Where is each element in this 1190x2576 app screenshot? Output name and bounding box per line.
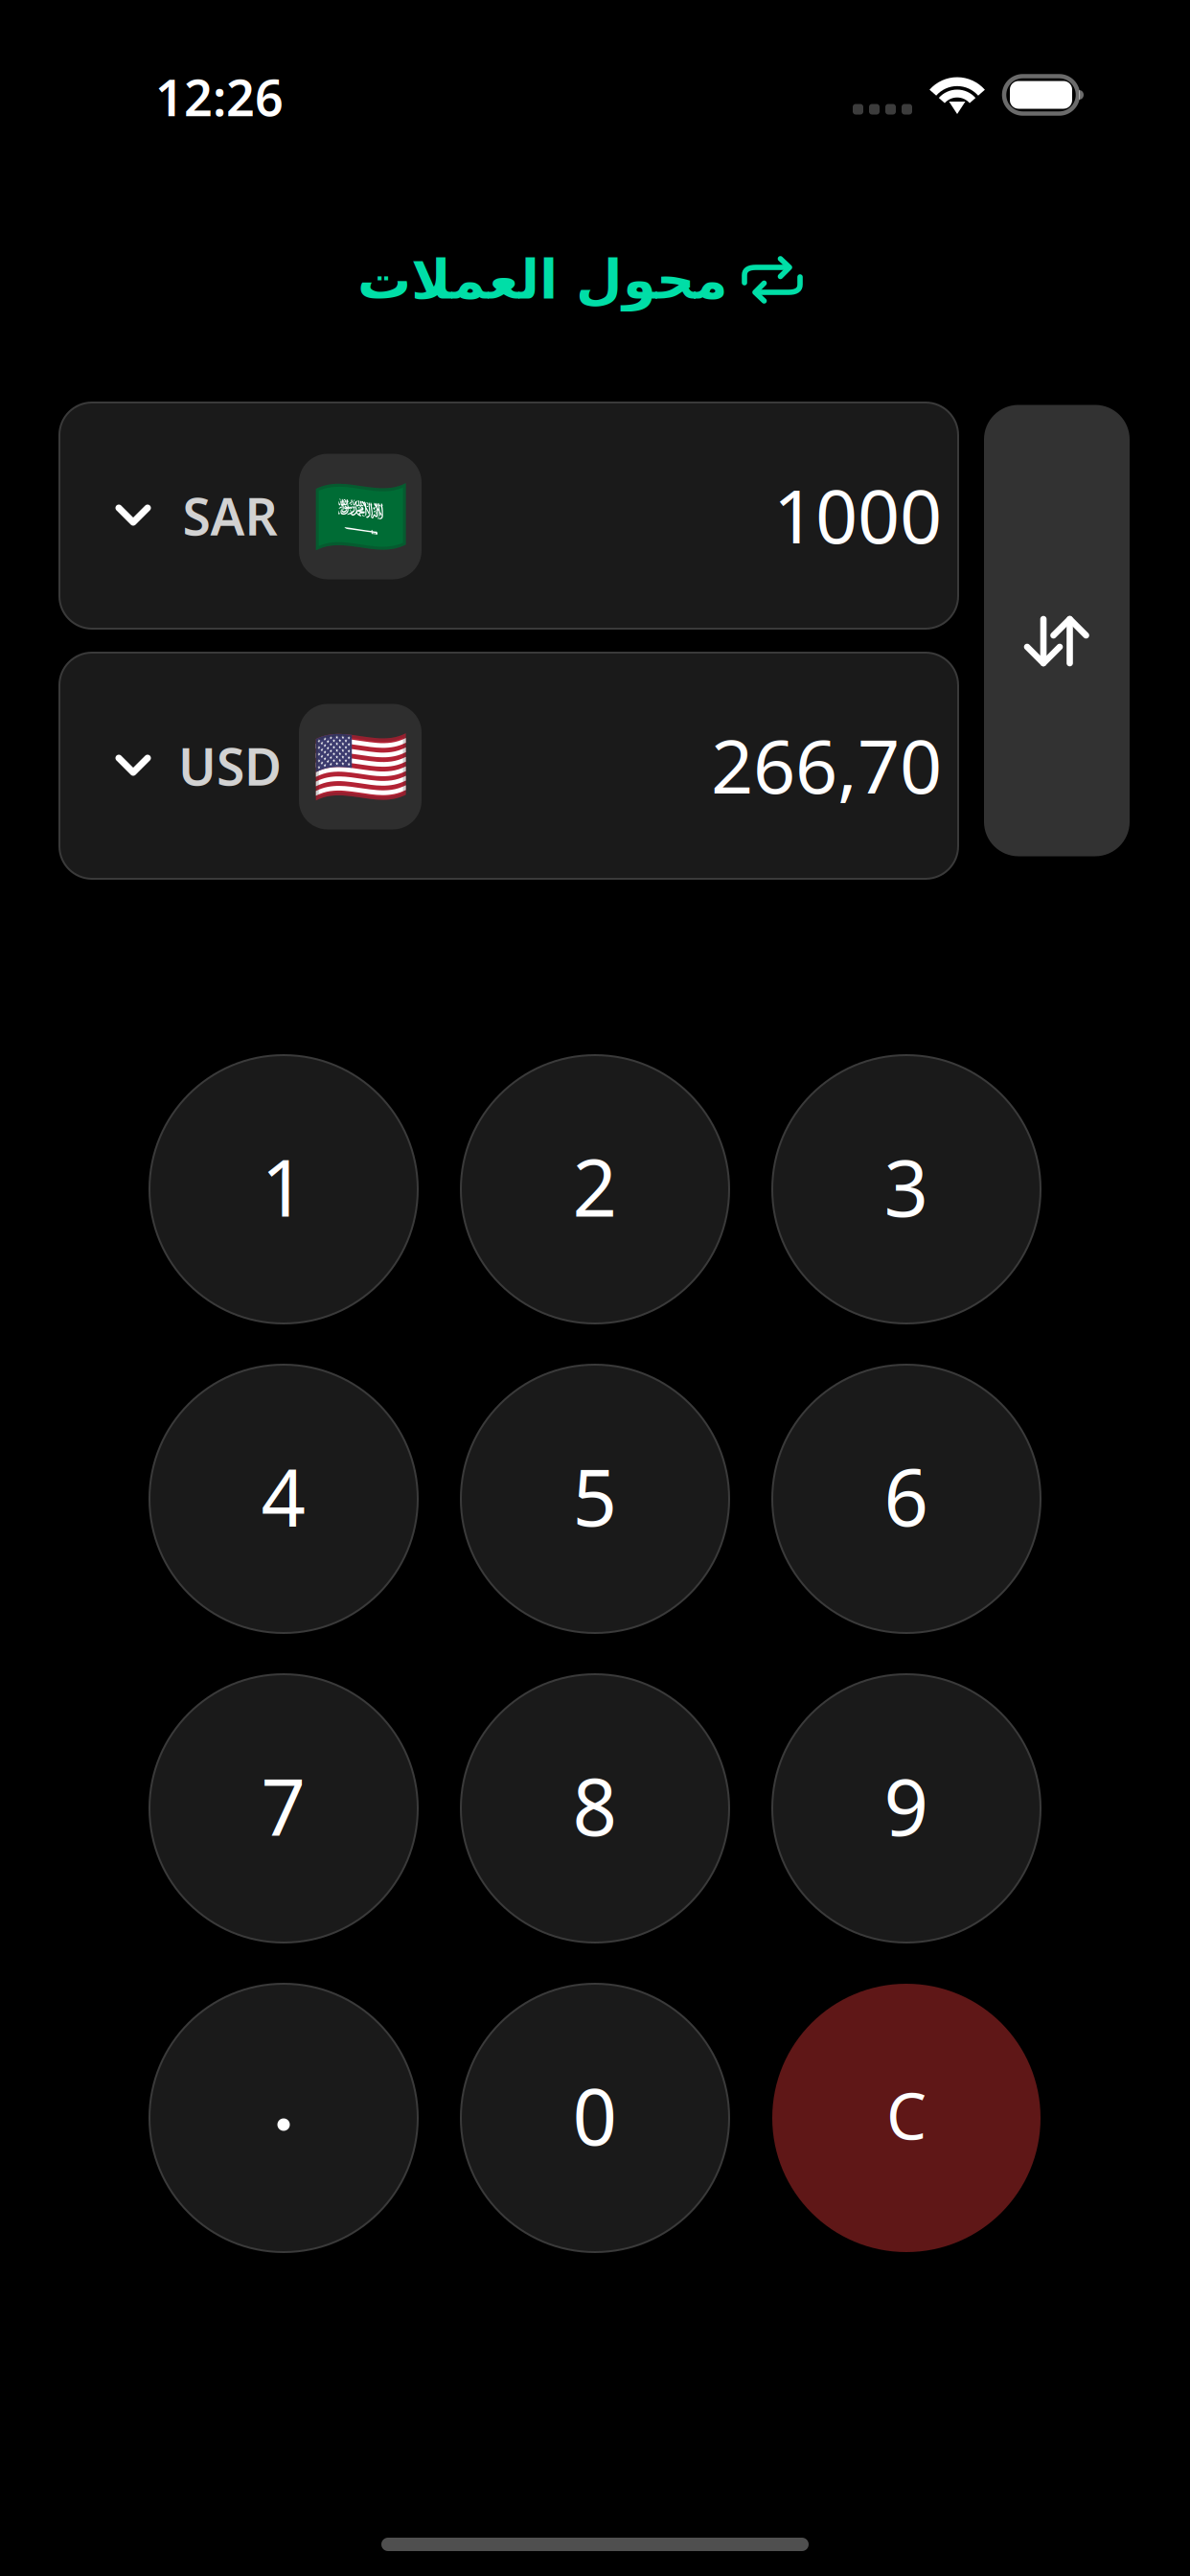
button[interactable]: 0 xyxy=(461,1984,729,2252)
staticText: 8 xyxy=(572,1754,618,1857)
button[interactable]: 4 xyxy=(149,1365,418,1633)
button[interactable]: 7 xyxy=(149,1674,418,1943)
staticText: 266,70 xyxy=(711,716,942,814)
button[interactable]: Swap currencies xyxy=(984,405,1130,856)
button[interactable]: 3 xyxy=(772,1055,1041,1323)
button[interactable]: USD xyxy=(59,653,958,879)
button[interactable]: 5 xyxy=(461,1365,729,1633)
staticText: USD xyxy=(178,732,282,800)
staticText: C xyxy=(886,2073,927,2157)
staticText: 7 xyxy=(261,1754,306,1857)
button[interactable]: Clear xyxy=(772,1984,1041,2252)
staticText: 6 xyxy=(884,1444,929,1548)
staticText: 12:26 xyxy=(155,64,284,130)
staticText: 4 xyxy=(261,1444,306,1548)
button[interactable]: 2 xyxy=(461,1055,729,1323)
button[interactable]: 8 xyxy=(461,1674,729,1943)
staticText: 🇺🇸 xyxy=(312,722,409,811)
staticText: 1 xyxy=(261,1135,306,1238)
button[interactable]: 6 xyxy=(772,1365,1041,1633)
staticText: 9 xyxy=(884,1754,929,1857)
staticText: محول العملات xyxy=(357,249,728,310)
staticText: 🇸🇦 xyxy=(312,472,409,561)
staticText: 3 xyxy=(884,1135,929,1238)
staticText: SAR xyxy=(183,482,277,550)
button[interactable]: 9 xyxy=(772,1674,1041,1943)
button[interactable]: 1 xyxy=(149,1055,418,1323)
button[interactable]: SAR xyxy=(59,402,958,629)
staticText: 5 xyxy=(572,1444,618,1548)
staticText: 1000 xyxy=(773,465,942,564)
staticText: 0 xyxy=(572,2063,618,2167)
button[interactable]: Decimal point xyxy=(149,1984,418,2252)
staticText: 2 xyxy=(572,1135,618,1238)
